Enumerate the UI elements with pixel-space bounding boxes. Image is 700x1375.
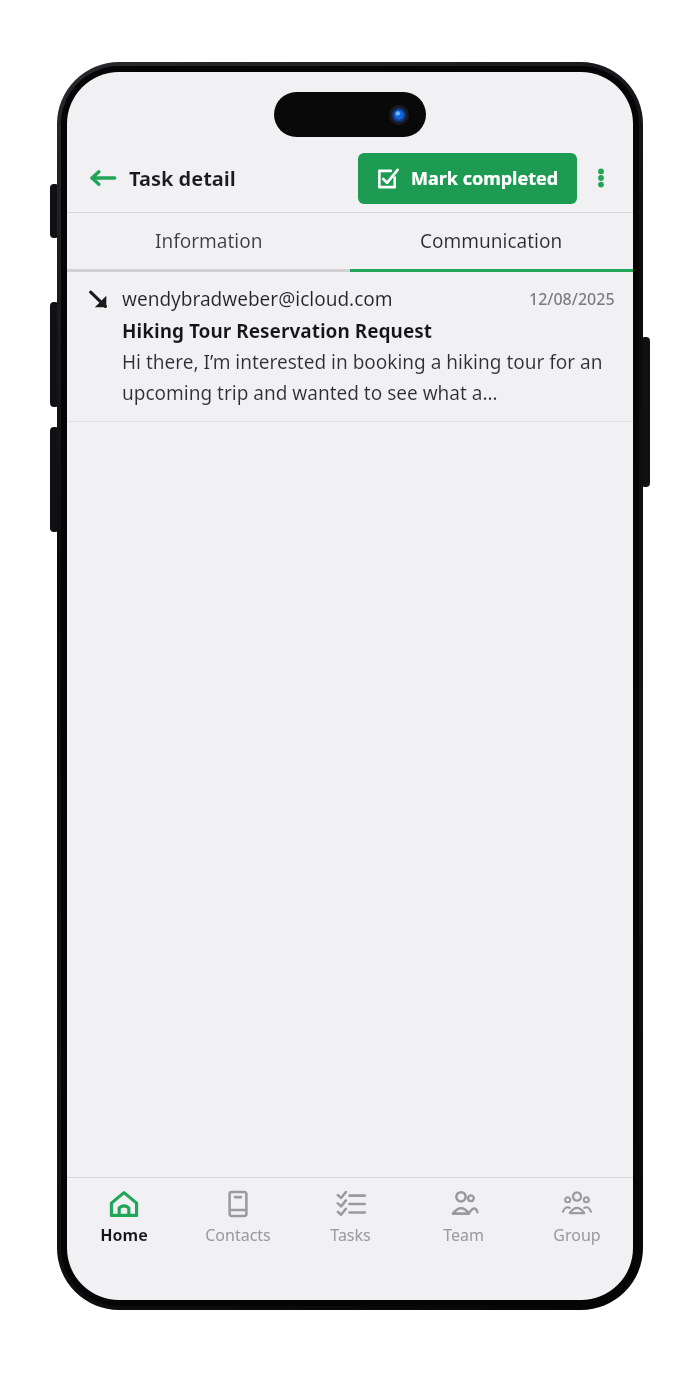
button[interactable]: Contacts xyxy=(181,1178,294,1256)
button[interactable]: Home xyxy=(67,1178,181,1256)
staticText: wendybradweber@icloud.com xyxy=(122,286,393,312)
staticText: Hiking Tour Reservation Request xyxy=(122,318,433,344)
staticText: Mark completed xyxy=(411,166,559,191)
button[interactable]: Tasks xyxy=(294,1178,407,1256)
staticText: Tasks xyxy=(330,1224,371,1246)
button[interactable]: More options xyxy=(581,158,621,198)
button[interactable]: wendybradweber@icloud.com xyxy=(67,272,633,421)
button[interactable]: Mark completed xyxy=(358,153,577,204)
button[interactable]: Team xyxy=(407,1178,520,1256)
staticText: Home xyxy=(100,1224,148,1246)
staticText: Task detail xyxy=(129,165,236,192)
button[interactable]: Communication xyxy=(350,213,633,269)
button[interactable]: Group xyxy=(520,1178,633,1256)
staticText: Information xyxy=(155,228,263,254)
staticText: Group xyxy=(553,1224,601,1246)
staticText: Communication xyxy=(420,228,563,254)
staticText: 12/08/2025 xyxy=(529,288,615,310)
staticText: Contacts xyxy=(205,1224,271,1246)
staticText: Team xyxy=(443,1224,484,1246)
button[interactable]: Information xyxy=(67,213,350,269)
staticText: Hi there, I’m interested in booking a hi… xyxy=(122,349,613,405)
button[interactable]: Back xyxy=(83,158,123,198)
